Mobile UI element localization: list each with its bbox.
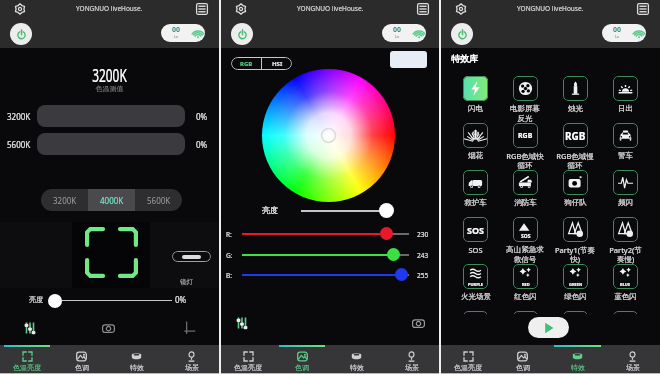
staticText: 0% xyxy=(196,139,208,150)
button[interactable]: 色调 xyxy=(275,345,329,374)
staticText: 243 xyxy=(417,251,429,260)
staticText: RGB xyxy=(565,129,586,143)
button[interactable]: Level xyxy=(181,320,196,335)
staticText: 3200K xyxy=(53,195,77,206)
staticText: 5600K xyxy=(7,139,31,150)
button[interactable]: Adjust xyxy=(23,321,37,335)
staticText: 场景 xyxy=(185,363,199,372)
button[interactable]: Settings xyxy=(454,2,467,15)
button[interactable]: Camera xyxy=(412,317,425,330)
button[interactable]: 烛光 xyxy=(550,76,600,113)
staticText: 特效 xyxy=(350,363,364,372)
button[interactable] xyxy=(451,311,500,314)
button[interactable]: 日出 xyxy=(600,76,650,113)
button[interactable]: 警车 xyxy=(600,123,650,160)
button[interactable]: 烟花 xyxy=(451,123,500,160)
staticText: 特效 xyxy=(571,363,585,372)
staticText: 日出 xyxy=(618,104,633,113)
button[interactable]: 电影屏幕 反光 xyxy=(500,76,550,123)
staticText: 色调 xyxy=(295,363,309,372)
button[interactable]: Menu xyxy=(416,2,429,15)
button[interactable]: SOS xyxy=(451,217,500,255)
button[interactable]: B: xyxy=(395,268,408,281)
button[interactable]: RGB xyxy=(550,123,600,170)
button[interactable]: PURPLE xyxy=(451,264,500,301)
staticText: 亮度 xyxy=(262,205,278,215)
button[interactable]: Color wheel xyxy=(262,69,395,202)
button[interactable] xyxy=(37,133,185,155)
button[interactable]: Play xyxy=(528,317,569,338)
button[interactable]: Menu xyxy=(195,2,208,15)
button[interactable]: Brightness xyxy=(379,203,394,218)
button[interactable] xyxy=(37,105,185,127)
button[interactable]: 救护车 xyxy=(451,170,500,207)
staticText: GREEN xyxy=(569,282,583,287)
staticText: 色温测值 xyxy=(0,84,219,93)
button[interactable]: RED xyxy=(500,264,550,301)
staticText: 3200K xyxy=(37,63,182,88)
staticText: BLUE xyxy=(620,282,631,287)
button[interactable]: Adjust xyxy=(235,316,249,330)
button[interactable]: 3200K xyxy=(41,189,88,211)
button[interactable]: Lux / WiFi status xyxy=(382,24,426,42)
button[interactable]: 消防车 xyxy=(500,170,550,207)
staticText: Party1(节奏 快) xyxy=(555,245,595,264)
button[interactable]: Power xyxy=(10,23,32,45)
staticText: RED xyxy=(522,282,530,287)
button[interactable]: RGB xyxy=(231,57,261,70)
button[interactable]: 场景 xyxy=(605,345,660,374)
button[interactable]: Preview xyxy=(390,51,427,68)
button[interactable]: Power xyxy=(451,23,473,45)
button[interactable]: 5600K xyxy=(135,189,182,211)
staticText: 电影屏幕 反光 xyxy=(510,104,540,123)
staticText: PURPLE xyxy=(468,282,484,287)
button[interactable]: 色调 xyxy=(54,345,109,374)
button[interactable]: Menu xyxy=(636,2,649,15)
button[interactable]: BLUE xyxy=(600,264,650,301)
button[interactable]: Power xyxy=(231,23,253,45)
staticText: HSI xyxy=(272,60,283,68)
button[interactable]: Party1(节奏 快) xyxy=(550,217,600,264)
button[interactable] xyxy=(600,311,650,314)
button[interactable]: 色温亮度 xyxy=(0,345,54,374)
button[interactable]: Lux / WiFi status xyxy=(602,24,646,42)
button[interactable]: G: xyxy=(387,248,400,261)
staticText: RGB色域慢 循环 xyxy=(556,151,594,170)
button[interactable]: 狗仔队 xyxy=(550,170,600,207)
button[interactable]: RGB xyxy=(500,123,550,170)
button[interactable]: 色温亮度 xyxy=(441,345,495,374)
button[interactable]: 闪电 xyxy=(451,76,500,113)
button[interactable]: 4000K xyxy=(88,189,135,211)
staticText: 烟花 xyxy=(468,151,483,160)
button[interactable]: 频闪 xyxy=(600,170,650,207)
staticText: 0% xyxy=(196,111,208,122)
button[interactable]: 特效 xyxy=(550,345,605,374)
staticText: YONGNUO liveHouse. xyxy=(297,4,364,13)
button[interactable]: GREEN xyxy=(550,264,600,301)
staticText: 色温亮度 xyxy=(454,363,482,372)
button[interactable]: 色温亮度 xyxy=(221,345,275,374)
staticText: R: xyxy=(226,230,232,239)
staticText: RGB xyxy=(240,60,253,68)
button[interactable]: Settings xyxy=(234,2,247,15)
button[interactable]: HSI xyxy=(262,57,292,70)
staticText: 00 xyxy=(172,25,181,35)
button[interactable]: 场景 xyxy=(164,345,219,374)
button[interactable]: Brightness xyxy=(48,294,62,308)
button[interactable]: Lux / WiFi status xyxy=(161,24,205,42)
button[interactable]: 特效 xyxy=(329,345,384,374)
button[interactable]: 特效 xyxy=(109,345,164,374)
button[interactable]: Camera xyxy=(102,322,115,335)
staticText: 救护车 xyxy=(464,198,487,207)
staticText: YONGNUO liveHouse. xyxy=(517,4,584,13)
button[interactable]: Lens light xyxy=(172,251,211,262)
button[interactable] xyxy=(500,311,550,314)
button[interactable]: 场景 xyxy=(384,345,439,374)
button[interactable]: R: xyxy=(380,227,393,240)
button[interactable]: Party2(节 奏慢) xyxy=(600,217,650,264)
button[interactable]: 色调 xyxy=(495,345,550,374)
button[interactable]: Settings xyxy=(13,2,26,15)
button[interactable]: SOS xyxy=(500,217,550,264)
staticText: 特效库 xyxy=(451,53,478,64)
button[interactable] xyxy=(550,311,600,314)
